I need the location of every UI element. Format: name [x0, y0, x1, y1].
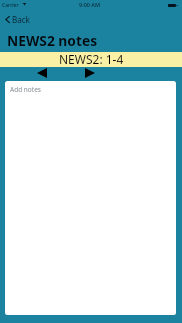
button[interactable]: Previous score range	[32, 66, 52, 79]
staticText: NEWS2: 1-4	[59, 51, 124, 66]
other: Battery full	[168, 4, 177, 7]
staticText: Add notes	[10, 85, 41, 94]
button[interactable]: NEWS2: 1-4	[0, 52, 182, 67]
button[interactable]: Back	[0, 13, 36, 26]
button[interactable]: Add notes	[5, 81, 176, 315]
staticText: 9:00 AM	[79, 1, 101, 8]
button[interactable]: Next score range	[80, 66, 100, 79]
staticText: Carrier	[2, 2, 19, 9]
staticText: Back	[12, 14, 30, 25]
staticText: NEWS2 notes	[7, 31, 98, 50]
other: Wi-Fi	[22, 3, 27, 6]
